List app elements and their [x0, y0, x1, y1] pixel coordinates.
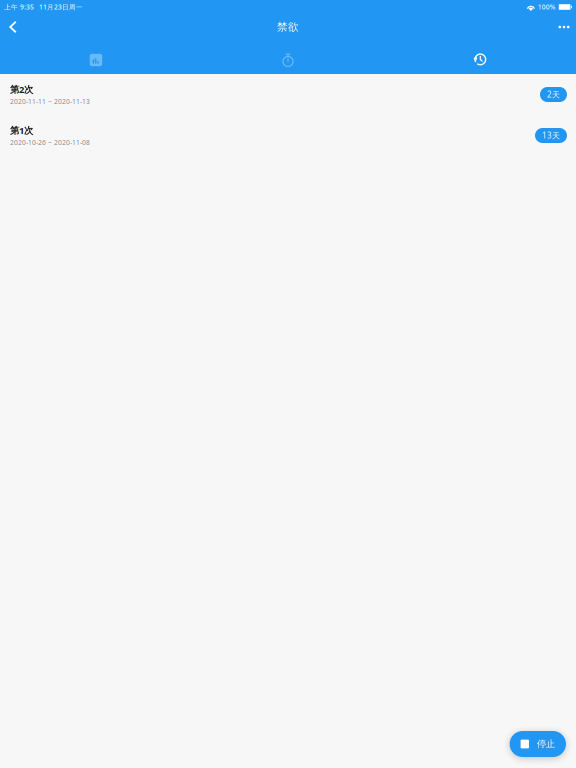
staticText: 上午 9:35: [4, 3, 34, 11]
staticText: 11月23日周一: [39, 3, 83, 11]
button[interactable]: More options: [553, 14, 575, 40]
staticText: 2020-10-26 ~ 2020-11-08: [10, 138, 90, 147]
button[interactable]: Back: [0, 14, 26, 40]
staticText: 第2次: [10, 83, 33, 95]
staticText: 2020-11-11 ~ 2020-11-13: [10, 97, 90, 106]
staticText: 第1次: [10, 124, 33, 136]
button[interactable]: 停止: [510, 731, 566, 757]
button[interactable]: Timer: [192, 40, 384, 74]
button[interactable]: Statistics: [0, 40, 192, 74]
staticText: 禁欲: [277, 20, 299, 33]
button[interactable]: 第1次: [0, 115, 576, 156]
staticText: 2天: [547, 89, 560, 100]
button[interactable]: History: [384, 40, 576, 74]
button[interactable]: 第2次: [0, 74, 576, 115]
staticText: 停止: [537, 738, 555, 750]
staticText: 13天: [542, 130, 560, 141]
staticText: 100%: [538, 3, 556, 11]
